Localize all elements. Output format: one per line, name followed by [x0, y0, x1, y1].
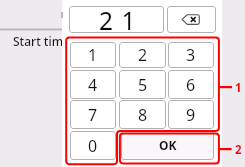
- button[interactable]: 2 1: [69, 6, 164, 33]
- staticText: 2: [235, 142, 242, 158]
- staticText: 0: [88, 135, 98, 157]
- staticText: 9: [186, 104, 196, 126]
- button[interactable]: 4: [70, 70, 116, 99]
- staticText: 2 1: [99, 6, 137, 31]
- staticText: 3: [186, 44, 196, 66]
- staticText: 8: [138, 104, 148, 126]
- staticText: 1: [235, 80, 242, 96]
- staticText: 5: [138, 74, 148, 96]
- button[interactable]: 8: [119, 100, 166, 129]
- button[interactable]: 9: [168, 100, 214, 129]
- staticText: 7: [88, 104, 98, 126]
- button[interactable]: 3: [168, 42, 214, 68]
- staticText: 6: [186, 74, 196, 96]
- staticText: 1: [88, 44, 98, 66]
- button[interactable]: 5: [119, 70, 166, 99]
- button[interactable]: 2: [119, 42, 166, 68]
- staticText: 2: [138, 44, 148, 66]
- button[interactable]: 0: [70, 131, 116, 160]
- button[interactable]: 1: [70, 42, 116, 68]
- staticText: OK: [159, 137, 177, 153]
- button[interactable]: 6: [168, 70, 214, 99]
- button[interactable]: 7: [70, 100, 116, 129]
- button[interactable]: OK: [121, 131, 214, 160]
- staticText: 4: [88, 74, 98, 96]
- staticText: Start tim: [13, 33, 64, 49]
- button[interactable]: Backspace: [167, 6, 216, 33]
